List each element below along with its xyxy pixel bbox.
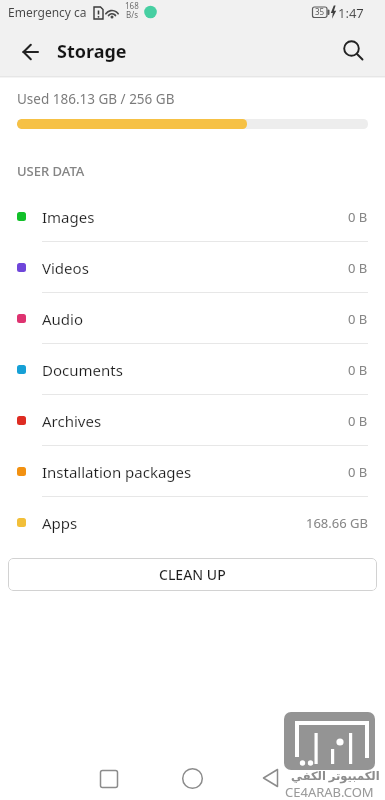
staticText: Installation packages (42, 462, 192, 482)
staticText: الكمبيوتر الكفي (291, 768, 380, 784)
staticText: 0 B (348, 463, 368, 481)
staticText: Storage (57, 39, 127, 64)
staticText: 0 B (348, 361, 368, 379)
staticText: Apps (42, 513, 78, 533)
button[interactable]: CLEAN UP (8, 558, 377, 591)
button[interactable]: Videos (0, 242, 385, 293)
staticText: Images (42, 207, 95, 227)
staticText: CE4ARAB.COM (285, 783, 374, 800)
staticText: Archives (42, 411, 102, 431)
button[interactable]: Audio (0, 293, 385, 344)
staticText: 35 (315, 6, 325, 17)
staticText: 0 B (348, 208, 368, 226)
button[interactable] (172, 758, 214, 800)
staticText: 168.66 GB (306, 514, 368, 532)
staticText: 168 (125, 0, 139, 11)
button[interactable] (330, 26, 385, 76)
staticText: Documents (42, 360, 123, 380)
staticText: USER DATA (17, 162, 85, 180)
staticText: 0 B (348, 259, 368, 277)
button[interactable]: Archives (0, 395, 385, 446)
staticText: Videos (42, 258, 89, 278)
staticText: 0 B (348, 310, 368, 328)
button[interactable] (0, 26, 48, 76)
button[interactable]: Installation packages (0, 446, 385, 497)
button[interactable]: Apps (0, 497, 385, 548)
staticText: B/s (126, 9, 139, 20)
staticText: 1:47 (338, 4, 364, 22)
staticText: Emergency ca (8, 4, 87, 20)
staticText: CLEAN UP (159, 565, 226, 584)
button[interactable]: Documents (0, 344, 385, 395)
staticText: Used 186.13 GB / 256 GB (17, 90, 175, 108)
button[interactable]: Images (0, 191, 385, 242)
button[interactable] (88, 758, 130, 800)
staticText: Audio (42, 309, 84, 329)
staticText: 0 B (348, 412, 368, 430)
button[interactable] (250, 758, 292, 800)
